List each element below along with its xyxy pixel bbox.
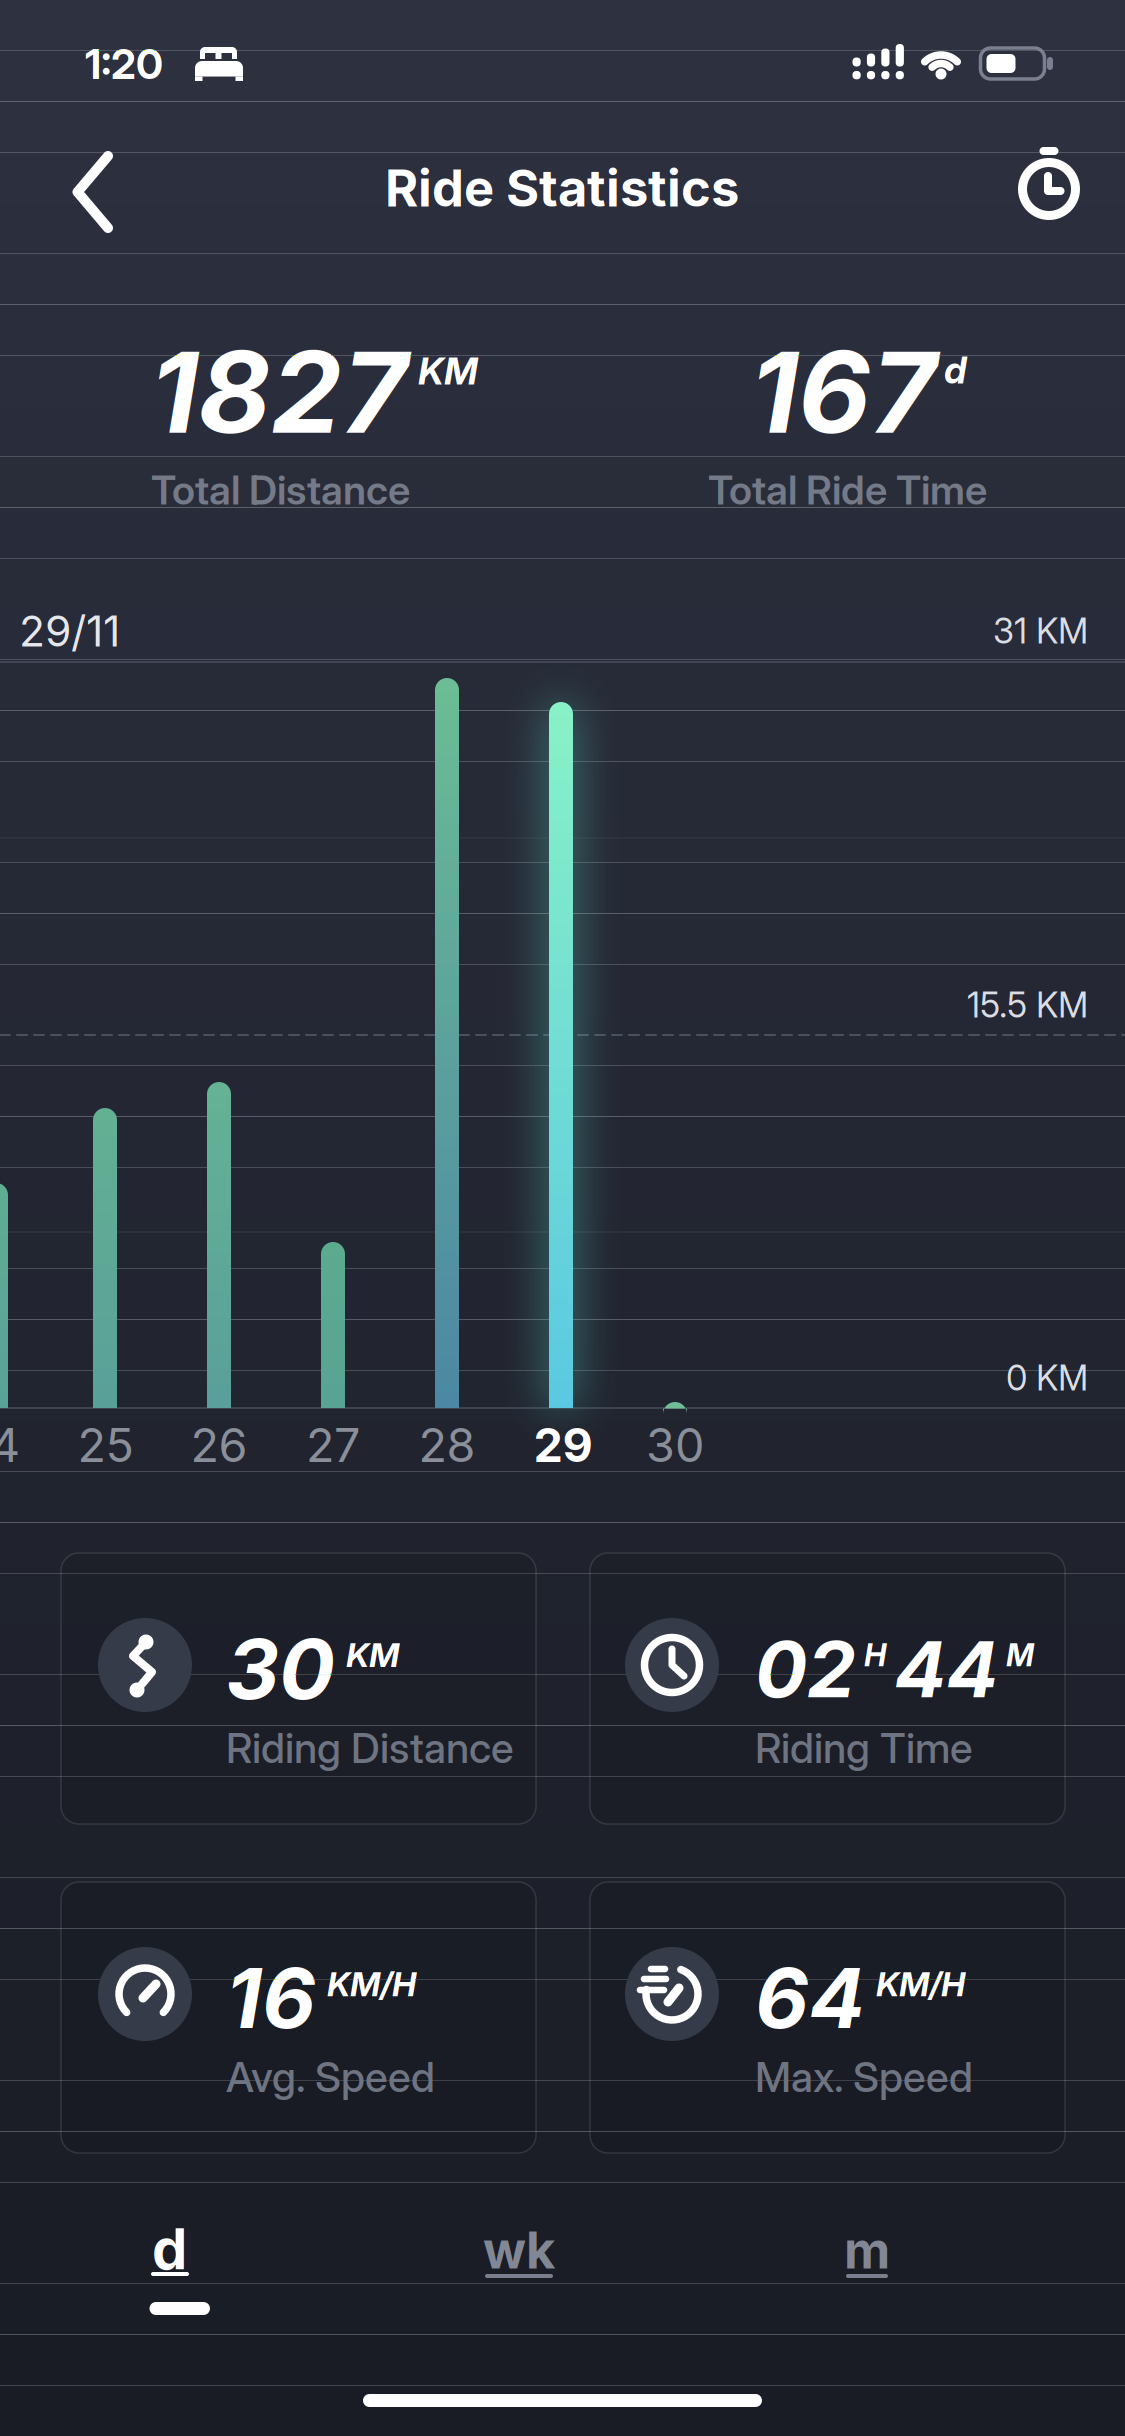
staticText: Max. Speed	[755, 2052, 973, 2102]
button[interactable]: Ride history	[1009, 135, 1089, 245]
staticText: KM	[346, 1635, 399, 1675]
staticText: 64	[755, 1948, 865, 2048]
staticText: M	[1006, 1636, 1034, 1673]
staticText: KM/H	[876, 1964, 965, 2004]
staticText: wk	[483, 2219, 555, 2281]
staticText: 0 KM	[1006, 1357, 1088, 1399]
staticText: KM/H	[327, 1964, 416, 2004]
staticText: 26	[190, 1417, 247, 1473]
staticText: 25	[77, 1417, 133, 1473]
staticText: 24	[0, 1417, 20, 1473]
staticText: 1:20	[85, 39, 163, 89]
staticText: Riding Time	[755, 1723, 973, 1773]
staticText: Total Ride Time	[708, 466, 987, 514]
staticText: 16	[226, 1948, 316, 2048]
staticText: Riding Distance	[226, 1723, 514, 1773]
staticText: H	[864, 1636, 886, 1673]
staticText: d	[944, 347, 967, 393]
staticText: 30	[226, 1619, 335, 1719]
button[interactable]: wk	[479, 2221, 559, 2281]
staticText: Ride Statistics	[385, 157, 739, 219]
button[interactable]: m	[837, 2221, 897, 2281]
staticText: 28	[418, 1417, 475, 1473]
staticText: KM	[418, 348, 478, 394]
staticText: 27	[306, 1417, 360, 1473]
staticText: 29/11	[19, 605, 120, 657]
staticText: m	[844, 2219, 890, 2281]
staticText: 02	[755, 1622, 856, 1716]
staticText: 1827	[150, 324, 407, 460]
staticText: 29	[533, 1417, 592, 1473]
staticText: d	[152, 2215, 187, 2283]
staticText: Avg. Speed	[226, 2052, 435, 2102]
staticText: 30	[646, 1417, 704, 1473]
staticText: Total Distance	[151, 466, 410, 514]
staticText: 167	[750, 324, 936, 460]
button[interactable]: d	[102, 2227, 237, 2322]
button[interactable]: Back	[55, 137, 135, 247]
staticText: 31 KM	[993, 610, 1088, 652]
staticText: 44	[894, 1622, 998, 1716]
staticText: 15.5 KM	[967, 984, 1088, 1026]
